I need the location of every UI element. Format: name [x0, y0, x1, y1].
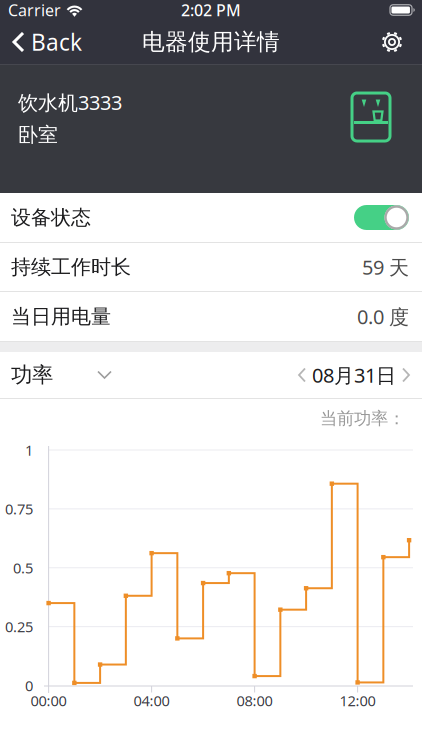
- staticText: 0: [25, 676, 33, 695]
- staticText: 0.75: [5, 499, 33, 519]
- staticText: Carrier: [8, 0, 61, 21]
- staticText: Back: [31, 27, 82, 57]
- staticText: 卧室: [18, 123, 58, 147]
- button[interactable]: [402, 367, 410, 382]
- staticText: 59 天: [362, 254, 409, 280]
- button[interactable]: 功率: [11, 362, 112, 388]
- staticText: 0.0 度: [357, 303, 409, 330]
- staticText: 电器使用详情: [142, 28, 280, 56]
- staticText: 0.25: [5, 617, 33, 636]
- staticText: 0.5: [13, 558, 33, 577]
- button[interactable]: Back: [0, 27, 82, 57]
- staticText: 设备状态: [11, 205, 91, 230]
- button[interactable]: 08月31日: [306, 362, 402, 388]
- staticText: 2:02 PM: [181, 0, 241, 21]
- staticText: 功率: [11, 362, 53, 388]
- staticText: 1: [25, 440, 33, 460]
- button[interactable]: [354, 205, 409, 230]
- button[interactable]: [298, 367, 306, 382]
- staticText: 持续工作时长: [11, 255, 131, 279]
- staticText: 08月31日: [312, 362, 396, 388]
- staticText: 当前功率：: [320, 408, 405, 429]
- button[interactable]: [381, 31, 422, 53]
- staticText: 04:00: [134, 691, 170, 710]
- staticText: 当日用电量: [11, 304, 111, 329]
- staticText: 08:00: [237, 691, 273, 710]
- staticText: 12:00: [340, 691, 376, 710]
- staticText: 饮水机3333: [18, 89, 122, 116]
- staticText: 00:00: [31, 691, 67, 710]
